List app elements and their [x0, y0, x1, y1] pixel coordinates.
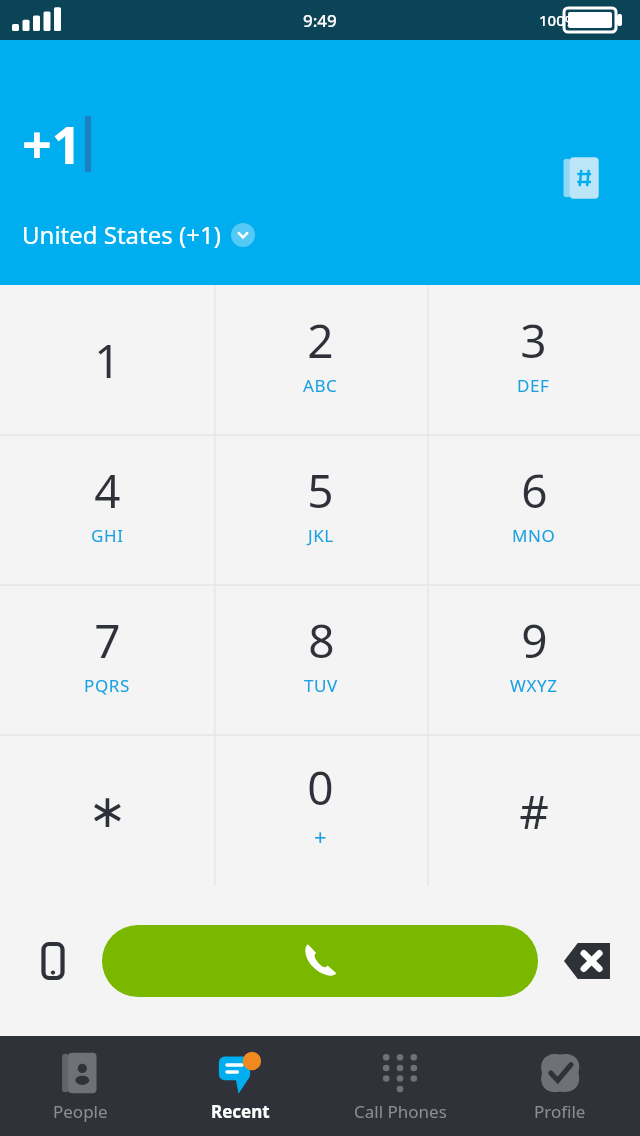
button[interactable]: Call	[102, 925, 538, 997]
button[interactable]: 6	[427, 436, 640, 586]
staticText: 4	[94, 459, 121, 522]
staticText: ABC	[303, 374, 338, 397]
staticText: +1	[22, 108, 82, 179]
staticText: GHI	[91, 524, 124, 547]
staticText: 9	[521, 609, 548, 672]
button[interactable]: 8	[214, 586, 427, 736]
button[interactable]: #	[427, 736, 640, 886]
button[interactable]: United States (+1)	[22, 218, 255, 251]
staticText: PQRS	[84, 674, 130, 697]
button[interactable]: 1	[0, 285, 214, 436]
staticText: DEF	[517, 374, 550, 397]
staticText: United States (+1)	[22, 218, 221, 251]
staticText: #	[519, 780, 549, 843]
button[interactable]: 3	[427, 285, 640, 436]
button[interactable]: Call mobile	[20, 928, 86, 994]
staticText: 100%	[539, 10, 578, 30]
staticText: Profile	[534, 1100, 586, 1123]
staticText: Recent	[211, 1100, 270, 1123]
button[interactable]: 9	[427, 586, 640, 736]
staticText: +	[314, 821, 328, 851]
staticText: Call Phones	[354, 1100, 447, 1123]
staticText: 5	[307, 459, 334, 522]
button[interactable]: 7	[0, 586, 214, 736]
staticText: MNO	[512, 524, 556, 547]
button[interactable]: Backspace	[554, 928, 620, 994]
staticText: 2	[307, 309, 334, 372]
staticText: People	[53, 1100, 108, 1123]
staticText: 8	[308, 609, 335, 672]
staticText: 3	[520, 309, 547, 372]
button[interactable]: 4	[0, 436, 214, 586]
button[interactable]: Profile	[480, 1036, 640, 1136]
staticText: 7	[94, 609, 121, 672]
button[interactable]: Call Phones	[320, 1036, 480, 1136]
staticText: WXYZ	[510, 674, 558, 697]
staticText: 1	[94, 329, 121, 392]
staticText: 0	[307, 756, 334, 819]
button[interactable]: Contacts	[554, 150, 610, 206]
staticText: TUV	[304, 674, 338, 697]
staticText: 6	[521, 459, 548, 522]
button[interactable]: 2	[214, 285, 427, 436]
button[interactable]: ∗	[0, 736, 214, 886]
button[interactable]: People	[0, 1036, 160, 1136]
button[interactable]: 5	[214, 436, 427, 586]
staticText: ∗	[88, 784, 127, 838]
button[interactable]: Recent	[160, 1036, 320, 1136]
staticText: JKL	[308, 524, 334, 547]
staticText: 9:49	[303, 9, 337, 32]
button[interactable]: 0	[214, 736, 427, 886]
